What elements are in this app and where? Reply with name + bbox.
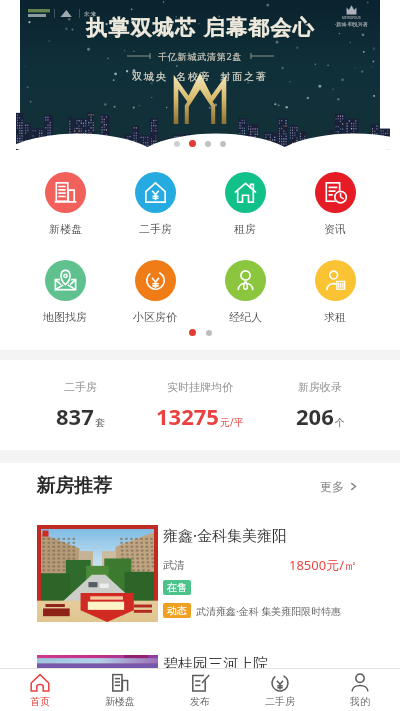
staticText: 经纪人 (229, 310, 262, 324)
button[interactable]: 资讯 (290, 172, 380, 236)
button[interactable]: 新房收录 (260, 380, 380, 431)
button[interactable]: 租房 (200, 172, 290, 236)
staticText: METROPOLIS (342, 16, 361, 20)
button[interactable]: 执掌双城芯 启幕都会心 (20, 0, 380, 150)
staticText: 执掌双城芯 启幕都会心 (86, 13, 315, 42)
staticText: 动态 (167, 604, 187, 617)
staticText: 在售 (167, 581, 187, 594)
button[interactable]: 地图找房 (20, 260, 110, 324)
staticText: 碧桂园三河上院 (163, 655, 268, 674)
button[interactable]: 小区房价 (110, 260, 200, 324)
button[interactable]: 二手房 (20, 380, 140, 431)
staticText: 更多 (320, 479, 344, 494)
staticText: 个 (335, 416, 345, 429)
button[interactable]: 求租 (290, 260, 380, 324)
staticText: 新房收录 (298, 380, 342, 394)
button[interactable]: 碧桂园三河上院 (0, 622, 400, 711)
staticText: 武清 (163, 558, 185, 572)
staticText: 新房推荐 (36, 474, 112, 498)
button[interactable]: 新楼盘 (80, 669, 160, 711)
staticText: 13275 (156, 401, 219, 431)
staticText: 地图找房 (43, 310, 87, 324)
button[interactable]: 经纪人 (200, 260, 290, 324)
staticText: 实时挂牌均价 (167, 380, 233, 394)
staticText: 二手房 (265, 695, 295, 708)
staticText: 雍鑫·金科集美雍阳 (163, 525, 288, 545)
staticText: 资讯 (324, 222, 346, 236)
button[interactable]: 更多 (320, 479, 358, 494)
staticText: 837 (56, 401, 94, 431)
staticText: 二手房 (139, 222, 172, 236)
staticText: 新楼盘 (49, 222, 82, 236)
button[interactable]: 雍鑫·金科集美雍阳 (0, 509, 400, 622)
staticText: 二手房 (64, 380, 97, 394)
staticText: 套 (95, 416, 105, 429)
staticText: 求租 (324, 310, 346, 324)
staticText: 未来 (84, 10, 96, 18)
staticText: 18500元/㎡ (289, 556, 358, 574)
button[interactable]: 发布 (160, 669, 240, 711)
button[interactable]: 新楼盘 (20, 172, 110, 236)
button[interactable]: 二手房 (110, 172, 200, 236)
staticText: 小区房价 (133, 310, 177, 324)
staticText: 206 (296, 401, 334, 431)
staticText: 千亿新城武清第2盘 (158, 50, 243, 62)
staticText: 我的 (350, 695, 370, 708)
staticText: 双城央 名校旁 封面之著 (132, 69, 268, 83)
staticText: 首页 (30, 695, 50, 708)
button[interactable]: 我的 (320, 669, 400, 711)
staticText: ·新城·和悦兴著 (335, 21, 368, 28)
staticText: 发布 (190, 695, 210, 708)
button[interactable]: 二手房 (240, 669, 320, 711)
staticText: 元/平 (220, 415, 244, 429)
button[interactable]: 首页 (0, 669, 80, 711)
button[interactable]: 实时挂牌均价 (140, 380, 260, 431)
staticText: 租房 (234, 222, 256, 236)
staticText: 武清雍鑫·金科 集美雍阳限时特惠 (196, 604, 342, 618)
staticText: 新楼盘 (105, 695, 135, 708)
